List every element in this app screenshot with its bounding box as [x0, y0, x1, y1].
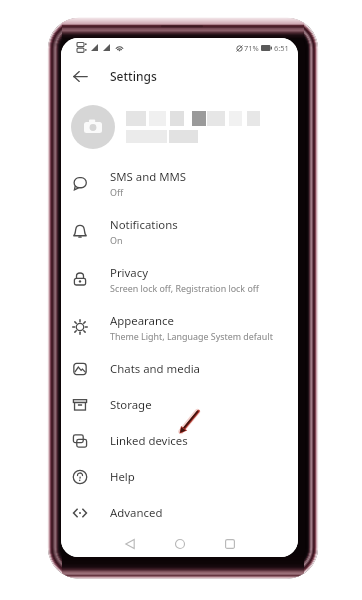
staticText: Appearance — [110, 313, 174, 329]
button[interactable]: Privacy — [61, 255, 298, 303]
button[interactable]: SMS and MMS — [61, 159, 298, 207]
staticText: 71% — [244, 43, 259, 53]
button[interactable]: Linked devices — [61, 423, 298, 459]
staticText: Notifications — [110, 217, 178, 233]
button[interactable]: Help — [61, 459, 298, 495]
staticText: On — [110, 234, 123, 246]
staticText: Linked devices — [110, 433, 188, 449]
button[interactable]: Chats and media — [61, 351, 298, 387]
button[interactable]: Advanced — [61, 495, 298, 531]
button[interactable]: Home — [163, 531, 197, 557]
staticText: Off — [110, 186, 124, 198]
staticText: 6:51 — [274, 43, 289, 53]
staticText: Chats and media — [110, 361, 200, 377]
button[interactable]: Recents — [213, 531, 247, 557]
button[interactable] — [61, 95, 298, 159]
staticText: Advanced — [110, 505, 163, 521]
staticText: Screen lock off, Registration lock off — [110, 282, 259, 294]
staticText: Privacy — [110, 265, 148, 281]
button[interactable]: Storage — [61, 387, 298, 423]
staticText: Theme Light, Language System default — [110, 330, 273, 342]
button[interactable]: Back — [113, 531, 147, 557]
button[interactable]: Notifications — [61, 207, 298, 255]
staticText: Storage — [110, 397, 152, 413]
staticText: SMS and MMS — [110, 169, 187, 185]
staticText: Help — [110, 469, 135, 485]
button[interactable]: Appearance — [61, 303, 298, 351]
staticText: Settings — [110, 68, 157, 84]
button[interactable]: Back — [61, 57, 99, 95]
